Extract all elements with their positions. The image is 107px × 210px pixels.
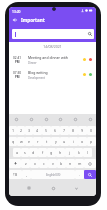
button[interactable]: w <box>17 137 25 146</box>
staticText: 7 <box>63 128 66 133</box>
staticText: 6 <box>54 128 57 133</box>
button[interactable]: l <box>83 148 92 157</box>
staticText: Development <box>28 76 45 80</box>
button[interactable]: Translate <box>73 117 78 122</box>
staticText: , <box>26 172 27 177</box>
button[interactable]: g <box>47 148 56 157</box>
button[interactable]: Sticker <box>44 117 49 122</box>
button[interactable]: . <box>75 170 84 179</box>
button[interactable]: h <box>56 148 65 157</box>
staticText: 3 <box>28 128 31 133</box>
staticText: y <box>55 139 57 144</box>
button[interactable]: q <box>9 137 17 146</box>
button[interactable]: 6 <box>51 126 60 135</box>
staticText: 0 <box>90 128 93 133</box>
button[interactable]: v <box>48 159 57 168</box>
button[interactable]: 7 <box>60 126 69 135</box>
button[interactable]: r <box>33 137 42 146</box>
button[interactable]: Back <box>11 16 19 24</box>
button[interactable]: x <box>30 159 39 168</box>
staticText: Meeting and dinner with <box>28 55 68 60</box>
button[interactable]: 0 <box>87 126 96 135</box>
staticText: t <box>46 139 48 144</box>
button[interactable]: Settings <box>58 117 63 122</box>
staticText: h <box>59 150 62 155</box>
button[interactable]: s <box>21 148 29 157</box>
staticText: o <box>81 139 84 144</box>
button[interactable]: 9 <box>78 126 87 135</box>
button[interactable]: Shift <box>9 159 21 168</box>
button[interactable]: 07:30 <box>9 67 96 82</box>
button[interactable]: d <box>29 148 38 157</box>
staticText: f <box>42 150 44 155</box>
button[interactable]: 1 <box>9 126 17 135</box>
button[interactable]: ?1B <box>9 170 22 179</box>
button[interactable]: 8 <box>69 126 78 135</box>
button[interactable]: n <box>66 159 75 168</box>
staticText: n <box>69 161 72 166</box>
staticText: PM <box>15 75 20 79</box>
button[interactable]: 4 <box>33 126 42 135</box>
button[interactable]: k <box>74 148 83 157</box>
staticText: 8 <box>72 128 75 133</box>
button[interactable] <box>12 29 94 39</box>
button[interactable]: GIF <box>29 117 34 122</box>
button[interactable]: e <box>25 137 33 146</box>
staticText: p <box>90 139 93 144</box>
button[interactable]: 5 <box>42 126 51 135</box>
staticText: Dinner <box>28 61 37 65</box>
staticText: m <box>78 161 82 166</box>
button[interactable]: Search <box>84 170 96 179</box>
staticText: 5 <box>45 128 48 133</box>
button[interactable]: a <box>13 148 21 157</box>
staticText: c <box>43 161 45 166</box>
staticText: x <box>34 161 36 166</box>
button[interactable]: i <box>69 137 78 146</box>
staticText: v <box>52 161 54 166</box>
staticText: q <box>12 139 15 144</box>
button[interactable]: Emoji <box>14 117 19 122</box>
staticText: 1 <box>12 128 15 133</box>
button[interactable]: z <box>21 159 30 168</box>
button[interactable]: 2 <box>17 126 25 135</box>
staticText: w <box>20 139 23 144</box>
staticText: Blog writing <box>28 70 48 75</box>
staticText: b <box>60 161 63 166</box>
staticText: j <box>69 150 70 155</box>
staticText: k <box>78 150 80 155</box>
button[interactable]: Backspace <box>84 159 96 168</box>
staticText: l <box>87 150 88 155</box>
button[interactable]: Back <box>72 184 80 192</box>
button[interactable]: p <box>87 137 96 146</box>
staticText: Important <box>21 17 45 23</box>
staticText: 2 <box>20 128 23 133</box>
staticText: s <box>24 150 26 155</box>
staticText: e <box>28 139 31 144</box>
staticText: PM <box>15 60 20 64</box>
button[interactable]: 3 <box>25 126 33 135</box>
button[interactable]: 02:41 <box>9 52 96 67</box>
button[interactable]: , <box>22 170 31 179</box>
button[interactable]: English(US) <box>31 170 75 179</box>
staticText: a <box>16 150 19 155</box>
button[interactable]: b <box>57 159 66 168</box>
button[interactable]: j <box>65 148 74 157</box>
button[interactable]: m <box>75 159 84 168</box>
button[interactable]: Home <box>49 184 57 192</box>
button[interactable]: c <box>39 159 48 168</box>
staticText: u <box>63 139 66 144</box>
button[interactable]: o <box>78 137 87 146</box>
button[interactable]: f <box>38 148 47 157</box>
button[interactable]: u <box>60 137 69 146</box>
button[interactable]: y <box>51 137 60 146</box>
staticText: English(US) <box>46 173 61 177</box>
staticText: 4 <box>36 128 39 133</box>
button[interactable]: More <box>88 117 93 122</box>
staticText: d <box>32 150 35 155</box>
staticText: . <box>79 172 80 177</box>
staticText: 9 <box>81 128 84 133</box>
staticText: r <box>37 139 39 144</box>
button[interactable]: t <box>42 137 51 146</box>
button[interactable]: Recents <box>25 184 33 192</box>
staticText: 13:20 <box>12 9 21 13</box>
